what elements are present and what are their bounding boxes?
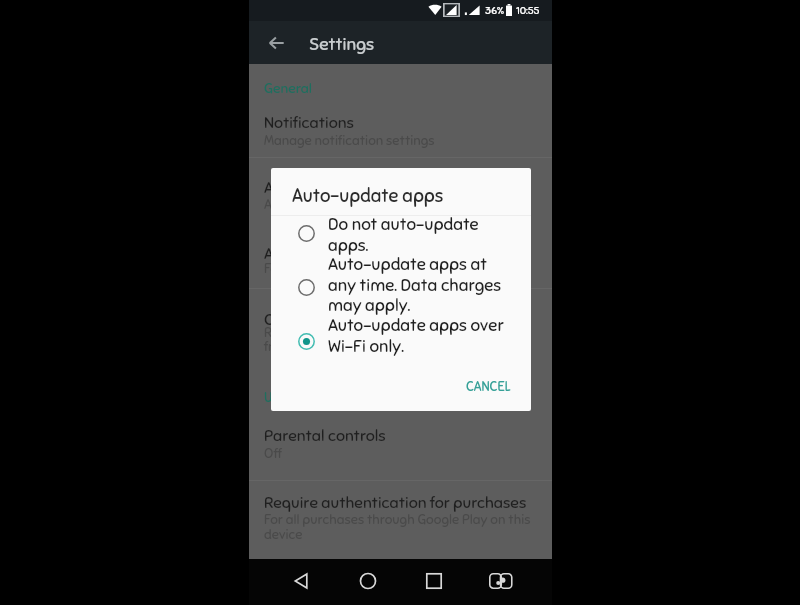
staticText: Notifications — [264, 113, 354, 133]
staticText: Auto-update apps — [292, 184, 444, 207]
staticText: Remove the searches you have performed f… — [264, 324, 515, 355]
button[interactable]: Selected option — [293, 328, 319, 354]
staticText: Do not auto-update apps. — [328, 214, 479, 256]
staticText: Auto-update apps — [264, 178, 395, 198]
button[interactable]: Capture plus — [483, 564, 517, 598]
staticText: CANCEL — [466, 379, 511, 395]
button[interactable]: Home — [351, 564, 385, 598]
staticText: Auto-add widgets — [264, 244, 391, 264]
button[interactable]: Navigate up — [259, 26, 293, 60]
staticText: 36% — [485, 4, 504, 17]
button[interactable]: Recent apps — [417, 564, 451, 598]
button[interactable]: Back — [285, 564, 319, 598]
staticText: 10:55 — [516, 4, 540, 17]
staticText: Parental controls — [264, 426, 386, 446]
staticText: Require authentication for purchases — [264, 493, 527, 513]
staticText: Settings — [309, 33, 374, 55]
staticText: For new apps — [264, 260, 343, 277]
button[interactable]: CANCEL — [459, 374, 518, 400]
staticText: User controls — [264, 389, 346, 406]
button[interactable]: Option — [293, 274, 319, 300]
button[interactable]: Option — [293, 220, 319, 246]
staticText: Off — [264, 445, 282, 462]
staticText: Clear local search history — [264, 310, 442, 330]
staticText: General — [264, 80, 312, 97]
staticText: For all purchases through Google Play on… — [264, 511, 531, 542]
staticText: Manage notification settings — [264, 132, 435, 149]
staticText: Auto-update apps at any time. Data charg… — [328, 254, 502, 316]
staticText: Auto-update apps over Wi-Fi only. — [328, 315, 504, 357]
staticText: Auto-update apps over Wi-Fi only — [264, 196, 465, 213]
